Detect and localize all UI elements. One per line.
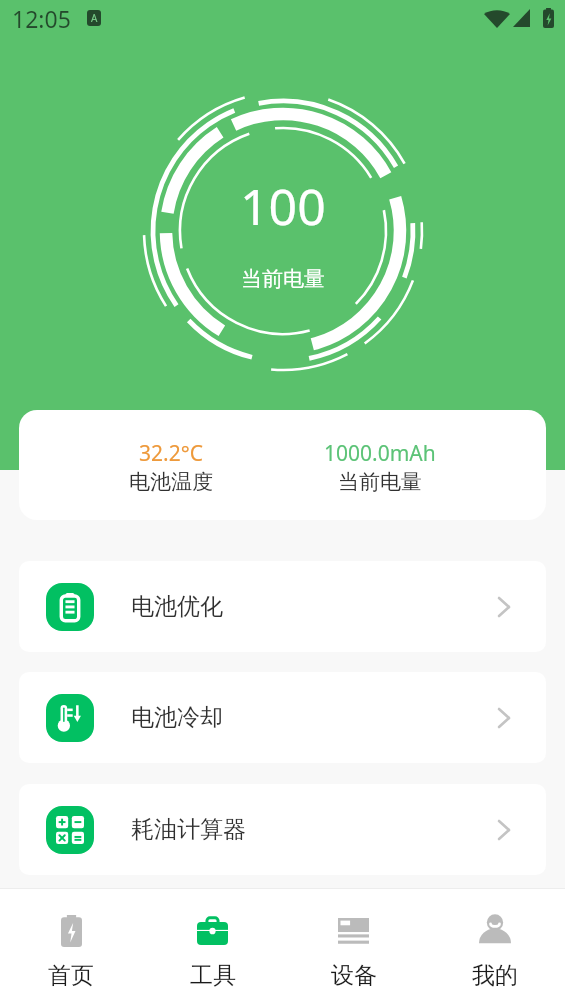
other: Open 电池冷却: [498, 708, 510, 728]
staticText: 32.2°C: [139, 439, 203, 468]
other: Open 电池优化: [498, 597, 510, 617]
staticText: 1000.0mAh: [324, 439, 436, 468]
staticText: 电池冷却: [131, 703, 223, 732]
staticText: 设备: [331, 961, 377, 990]
staticText: 12:05: [12, 3, 71, 34]
staticText: 当前电量: [241, 266, 325, 292]
button[interactable]: 工具: [142, 889, 283, 1004]
button[interactable]: 耗油计算器: [19, 784, 546, 875]
other: Wi-Fi signal: [484, 9, 510, 28]
other: Open 耗油计算器: [498, 820, 510, 840]
button[interactable]: 电池冷却: [19, 672, 546, 763]
button[interactable]: 首页: [0, 889, 142, 1004]
staticText: 当前电量: [338, 469, 422, 495]
staticText: 我的: [472, 961, 518, 990]
staticText: 工具: [190, 961, 236, 990]
button[interactable]: 电池优化: [19, 561, 546, 652]
other: Cellular signal: [513, 9, 530, 27]
staticText: A: [91, 11, 98, 25]
staticText: 首页: [48, 961, 94, 990]
button[interactable]: 设备: [283, 889, 424, 1004]
other: Battery charging: [543, 8, 554, 28]
staticText: 电池温度: [129, 469, 213, 495]
staticText: 耗油计算器: [131, 815, 246, 844]
button[interactable]: 我的: [424, 889, 565, 1004]
staticText: 电池优化: [131, 592, 223, 621]
staticText: 100: [240, 172, 326, 240]
